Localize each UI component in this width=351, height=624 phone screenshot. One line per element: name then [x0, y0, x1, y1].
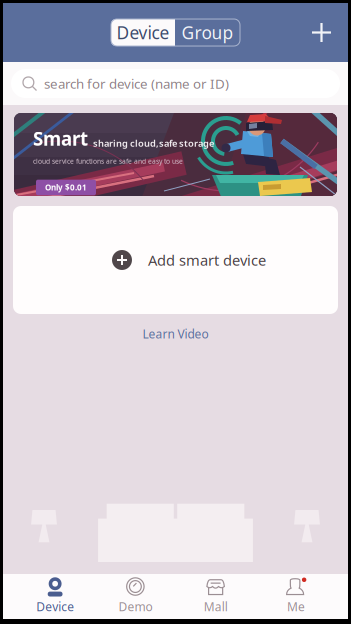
button[interactable]: Device: [15, 571, 95, 621]
button[interactable]: Group: [175, 19, 240, 46]
staticText: Device: [36, 598, 74, 614]
button[interactable]: Smart: [14, 113, 337, 196]
staticText: search for device (name or ID): [44, 75, 229, 92]
staticText: Device: [116, 21, 169, 44]
button[interactable]: Learn Video: [130, 314, 220, 348]
staticText: Smart: [33, 126, 88, 151]
staticText: sharing cloud,safe storage: [93, 137, 214, 149]
staticText: Group: [181, 21, 233, 44]
button[interactable]: Add device: [300, 11, 343, 54]
staticText: Learn Video: [142, 326, 208, 342]
staticText: Only $0.01: [45, 182, 87, 193]
button[interactable]: Demo: [95, 571, 175, 621]
staticText: Mall: [204, 598, 228, 614]
staticText: Me: [287, 598, 305, 614]
staticText: Add smart device: [148, 250, 266, 270]
button[interactable]: Device: [111, 19, 175, 46]
button[interactable]: Add smart device: [13, 206, 338, 314]
button[interactable]: Mall: [175, 571, 256, 621]
staticText: cloud service functions are safe and eas…: [33, 157, 183, 166]
button[interactable]: search for device (name or ID): [11, 69, 340, 98]
staticText: Demo: [118, 598, 152, 614]
button[interactable]: Me: [256, 571, 336, 621]
